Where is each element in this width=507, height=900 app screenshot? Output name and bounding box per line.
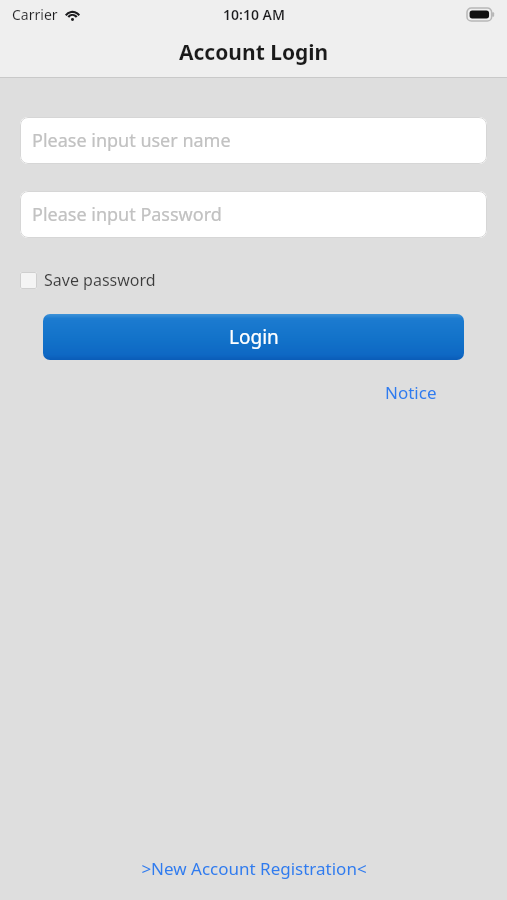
staticText: Please input user name (32, 128, 231, 153)
button[interactable]: Please input Password (20, 191, 487, 238)
staticText: 10:10 AM (223, 5, 285, 24)
button[interactable]: Please input user name (20, 117, 487, 164)
button[interactable]: >New Account Registration< (133, 851, 375, 886)
button[interactable]: Notice (381, 377, 441, 408)
other: Wi-Fi signal (64, 8, 81, 21)
staticText: >New Account Registration< (141, 857, 367, 880)
staticText: Notice (385, 381, 437, 404)
staticText: Carrier (12, 5, 58, 24)
staticText: Save password (44, 269, 156, 291)
staticText: Login (229, 324, 279, 350)
button[interactable]: Login (43, 314, 464, 360)
button[interactable]: Save password (20, 267, 166, 293)
other: Battery full (467, 8, 495, 21)
staticText: Account Login (179, 38, 329, 67)
staticText: Please input Password (32, 202, 222, 227)
